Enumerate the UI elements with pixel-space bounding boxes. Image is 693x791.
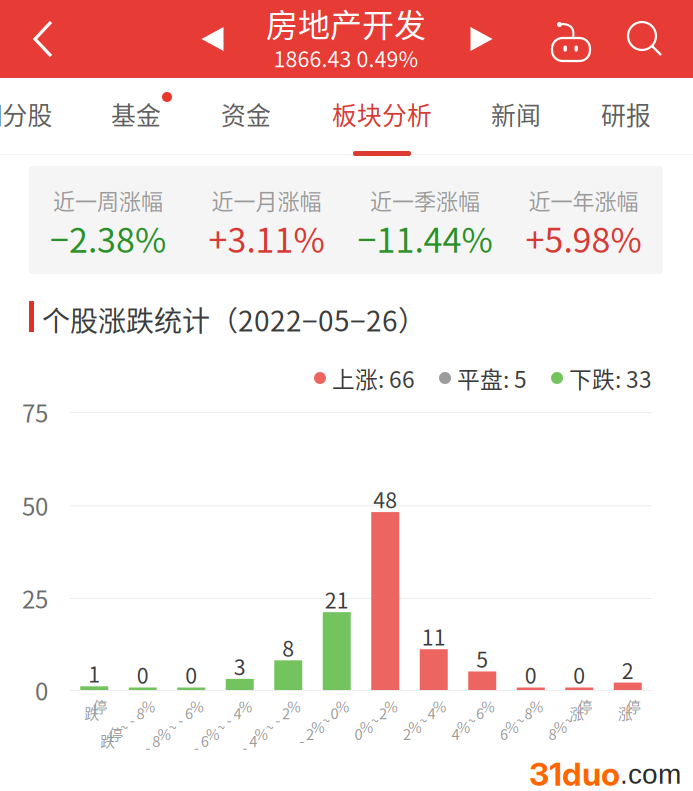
staticText: 25 [22,581,48,615]
staticText: 21 [325,584,349,615]
button[interactable]: 上一个板块 [185,0,241,78]
staticText: ~ [468,709,476,730]
staticText: 3 [234,650,246,681]
staticText: - [178,709,183,730]
staticText: 0 [137,659,149,690]
button[interactable]: 板块分析 [322,78,442,158]
staticText: 涨 [569,702,584,723]
staticText: 8 [282,632,294,663]
staticText: 停 [93,695,108,717]
staticText: 个股涨跌统计（2022−05−26） [42,299,426,339]
button[interactable]: 细分股 [0,78,75,158]
staticText: 细分股 [0,96,52,132]
staticText: - [194,737,199,758]
staticText: 8 [152,730,160,751]
staticText: % [336,695,350,717]
staticText: - [227,709,232,730]
staticText: - [130,709,135,730]
staticText: ~ [120,716,128,737]
button[interactable]: 研报 [566,78,686,158]
staticText: % [505,716,519,737]
staticText: 31duo [529,755,620,791]
staticText: 跌 [84,702,99,723]
staticText: % [408,716,422,737]
staticText: % [311,716,325,737]
staticText: ~ [217,716,225,737]
staticText: 下跌: 33 [569,362,652,394]
staticText: % [254,723,268,744]
staticText: 0 [525,659,537,690]
staticText: 0 [35,673,48,707]
staticText: % [142,695,156,717]
staticText: 4 [451,723,459,744]
staticText: 1 [88,658,100,689]
staticText: ~ [322,709,330,730]
button[interactable]: 基金 [76,78,196,158]
staticText: −11.44% [357,213,492,263]
staticText: 2 [403,723,411,744]
staticText: 6 [185,702,193,723]
staticText: −2.38% [50,213,166,263]
staticText: % [239,695,253,717]
staticText: ~ [266,716,274,737]
staticText: 50 [22,488,48,523]
staticText: 2 [306,723,314,744]
button[interactable]: 下一个板块 [454,0,510,78]
staticText: 涨 [618,702,633,723]
staticText: ~ [371,709,379,730]
staticText: - [275,709,280,730]
staticText: - [243,737,248,758]
staticText: % [157,723,171,744]
staticText: 75 [22,395,48,429]
staticText: .com [620,758,681,790]
staticText: 11 [422,621,446,652]
staticText: 新闻 [491,96,541,132]
staticText: 8 [524,702,532,723]
button[interactable]: 返回 [6,0,82,78]
staticText: 5 [476,643,488,674]
staticText: 近一季涨幅 [370,184,480,216]
staticText: 1866.43 0.49% [273,43,418,73]
staticText: 2 [282,702,290,723]
staticText: 48 [373,484,397,514]
staticText: 8 [548,723,556,744]
staticText: 2 [379,702,387,723]
staticText: ~ [516,709,524,730]
button[interactable]: 智能助手 [533,0,609,78]
staticText: 停 [578,695,593,717]
staticText: ~ [419,709,427,730]
staticText: +3.11% [208,213,324,263]
staticText: - [299,730,304,751]
staticText: 2 [622,654,634,685]
staticText: 近一周涨幅 [53,184,163,216]
staticText: 上涨: 66 [332,362,415,394]
staticText: 8 [137,702,145,723]
staticText: % [530,695,544,717]
button[interactable]: 新闻 [456,78,576,158]
staticText: 房地产开发 [266,0,426,46]
staticText: 4 [234,702,242,723]
staticText: 基金 [111,96,161,132]
staticText: 4 [428,702,436,723]
staticText: +5.98% [525,213,641,263]
staticText: 平盘: 5 [457,362,527,394]
staticText: 4 [249,730,257,751]
staticText: 板块分析 [332,96,432,132]
staticText: 0 [573,659,585,690]
staticText: - [146,737,151,758]
staticText: % [206,723,220,744]
staticText: 0 [331,702,339,723]
staticText: 资金 [221,96,271,132]
button[interactable]: 搜索 [610,0,686,78]
staticText: 跌 [100,730,115,751]
staticText: % [360,716,374,737]
staticText: % [287,695,301,717]
staticText: 停 [108,723,123,744]
staticText: % [457,716,471,737]
staticText: % [190,695,204,717]
staticText: 停 [626,695,641,717]
staticText: 近一年涨幅 [528,184,638,216]
staticText: % [554,716,568,737]
button[interactable]: 资金 [186,78,306,158]
staticText: % [481,695,495,717]
